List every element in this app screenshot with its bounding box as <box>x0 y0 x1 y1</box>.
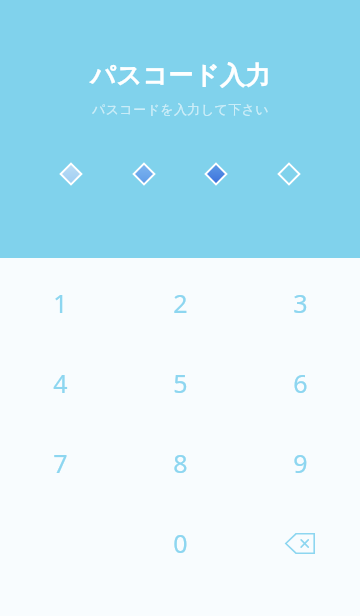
button[interactable]: 1 <box>0 263 120 343</box>
staticText: 9 <box>293 446 308 480</box>
staticText: 1 <box>53 286 68 320</box>
button[interactable]: 2 <box>120 263 240 343</box>
staticText: 0 <box>173 526 188 560</box>
staticText: パスコード入力 <box>90 60 271 91</box>
button[interactable]: 6 <box>240 343 360 423</box>
button[interactable]: Backspace <box>240 503 360 583</box>
staticText: 4 <box>53 366 68 400</box>
staticText: パスコードを入力して下さい <box>92 101 269 117</box>
button[interactable]: 8 <box>120 423 240 503</box>
staticText: 5 <box>173 366 188 400</box>
button[interactable]: 4 <box>0 343 120 423</box>
button[interactable]: 9 <box>240 423 360 503</box>
staticText: 3 <box>293 286 308 320</box>
staticText: 2 <box>173 286 188 320</box>
staticText: 7 <box>53 446 68 480</box>
button[interactable]: 5 <box>120 343 240 423</box>
staticText: 6 <box>293 366 308 400</box>
button[interactable]: 0 <box>120 503 240 583</box>
staticText: 8 <box>173 446 188 480</box>
button[interactable]: 7 <box>0 423 120 503</box>
button[interactable]: 3 <box>240 263 360 343</box>
